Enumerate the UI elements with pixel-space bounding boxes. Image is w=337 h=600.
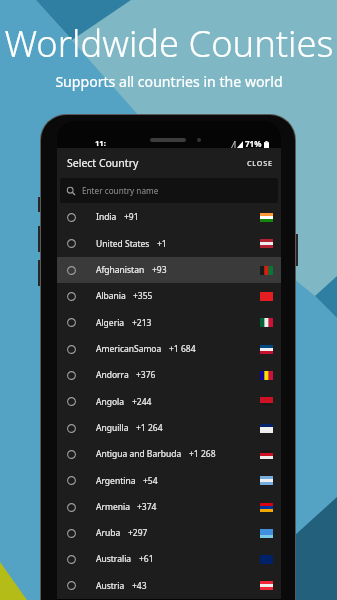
staticText: Austria	[96, 580, 125, 592]
staticText: +43	[132, 580, 147, 592]
staticText: +213	[132, 317, 152, 329]
button[interactable]: CLOSE	[247, 153, 273, 173]
staticText: +297	[128, 527, 148, 539]
staticText: Select Country	[67, 156, 139, 170]
button[interactable]: Anguilla	[57, 415, 281, 441]
staticText: United States	[96, 238, 150, 250]
staticText: Antigua and Barbuda	[96, 448, 182, 460]
button[interactable]: Aruba	[57, 520, 281, 546]
staticText: +1	[157, 238, 167, 250]
staticText: Algeria	[96, 317, 125, 329]
staticText: +1 264	[136, 422, 163, 434]
staticText: +93	[152, 264, 167, 276]
staticText: +61	[139, 553, 154, 565]
button[interactable]: Enter country name	[60, 178, 278, 203]
button[interactable]: Afghanistan	[57, 257, 281, 283]
staticText: +244	[132, 396, 152, 408]
staticText: Argentina	[96, 475, 136, 487]
staticText: AmericanSamoa	[96, 343, 162, 355]
button[interactable]: Argentina	[57, 467, 281, 494]
button[interactable]: Armenia	[57, 494, 281, 520]
button[interactable]: Algeria	[57, 309, 281, 336]
staticText: Andorra	[96, 369, 129, 381]
button[interactable]: India	[57, 204, 281, 230]
staticText: Anguilla	[96, 422, 129, 434]
button[interactable]: Andorra	[57, 362, 281, 388]
staticText: +1 684	[169, 343, 196, 355]
staticText: Supports all countries in the world	[55, 72, 283, 91]
staticText: 71%	[245, 138, 262, 149]
staticText: Aruba	[96, 527, 121, 539]
staticText: 11:	[95, 138, 106, 148]
button[interactable]: Austria	[57, 572, 281, 599]
button[interactable]: Australia	[57, 546, 281, 572]
staticText: Afghanistan	[96, 264, 145, 276]
staticText: Australia	[96, 553, 132, 565]
staticText: CLOSE	[247, 158, 273, 168]
button[interactable]: Albania	[57, 283, 281, 309]
button[interactable]: AmericanSamoa	[57, 336, 281, 362]
staticText: +376	[136, 369, 156, 381]
staticText: Armenia	[96, 501, 130, 513]
staticText: +355	[133, 290, 153, 302]
button[interactable]: Angola	[57, 388, 281, 415]
staticText: India	[96, 211, 117, 223]
staticText: Angola	[96, 396, 125, 408]
button[interactable]: Antigua and Barbuda	[57, 441, 281, 467]
staticText: Enter country name	[82, 185, 159, 196]
button[interactable]: United States	[57, 230, 281, 257]
staticText: +1 268	[189, 448, 216, 460]
staticText: +91	[124, 211, 139, 223]
staticText: +54	[143, 475, 158, 487]
staticText: +374	[137, 501, 157, 513]
staticText: Worldwide Counties	[4, 18, 334, 67]
staticText: Albania	[96, 290, 126, 302]
